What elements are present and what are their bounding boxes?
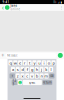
button[interactable]: x [20,73,24,78]
button[interactable]: ☻ [18,80,22,85]
button[interactable]: e [18,60,22,65]
button[interactable]: g [30,67,34,72]
staticText: u [38,60,40,65]
button[interactable]: Attach [1,53,4,58]
staticText: d [21,67,23,72]
staticText: o [48,60,50,65]
button[interactable]: v [30,73,34,78]
button[interactable]: a [11,67,15,72]
button[interactable]: f [25,67,29,72]
button[interactable]: 123 [12,80,17,85]
button[interactable]: c [25,73,29,78]
button[interactable]: z [16,73,20,78]
button[interactable]: j [39,67,43,72]
staticText: g [31,67,33,72]
staticText: s [17,67,19,72]
staticText: ⋮ [59,5,63,10]
staticText: n [40,73,42,79]
staticText: Jane [10,4,17,7]
staticText: c [26,73,28,79]
staticText: h [36,67,38,72]
staticText: e [19,60,21,65]
button[interactable]: l [49,67,53,72]
button[interactable]: m [44,73,48,78]
staticText: b [36,73,38,79]
button[interactable]: o [47,60,51,65]
button[interactable]: k [44,67,48,72]
button[interactable]: b [35,73,39,78]
staticText: p [52,60,54,65]
staticText: 123 [12,79,16,86]
button[interactable]: s [16,67,20,72]
button[interactable]: More options [60,4,63,11]
button[interactable]: h [35,67,39,72]
staticText: v [31,73,33,79]
button[interactable]: p [51,60,55,65]
staticText: j [41,67,42,72]
staticText: online [10,7,20,11]
staticText: x [21,73,23,79]
staticText: i [43,60,44,65]
staticText: + [1,52,4,59]
button[interactable]: Send [58,53,63,58]
staticText: t [29,60,30,65]
button[interactable]: Back [1,4,4,11]
staticText: a [12,67,14,72]
button[interactable]: n [39,73,43,78]
button[interactable]: i [42,60,46,65]
staticText: y [33,60,35,65]
button[interactable]: return [43,80,52,85]
button[interactable]: w [13,60,17,65]
staticText: ☻ [18,80,22,85]
staticText: return [43,81,52,84]
staticText: ‹ [2,3,4,12]
button[interactable]: ⌫ [49,73,55,78]
staticText: ⇧ [11,74,13,77]
button[interactable]: r [23,60,27,65]
staticText: l [51,67,52,72]
staticText: w [14,60,17,65]
staticText: llı ⊿ ▮ [54,0,62,4]
button[interactable]: q [8,60,12,65]
button[interactable]: t [28,60,32,65]
staticText: k [45,67,47,72]
staticText: r [24,60,26,65]
staticText: Message [7,54,18,57]
staticText: f [27,67,28,72]
button[interactable]: space [23,80,42,85]
button[interactable]: ⇧ [9,73,15,78]
button[interactable]: u [37,60,41,65]
staticText: ⌫ [50,74,54,77]
staticText: space [29,81,36,84]
staticText: m [44,73,48,79]
button[interactable]: y [32,60,36,65]
staticText: 9:41 [2,0,9,4]
staticText: q [9,60,11,65]
button[interactable]: d [20,67,24,72]
staticText: z [17,73,19,79]
